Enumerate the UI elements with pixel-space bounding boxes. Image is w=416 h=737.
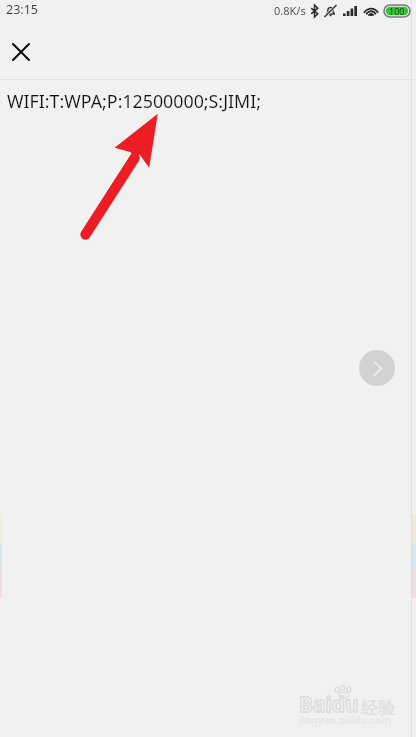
staticText: Baidu bbox=[299, 690, 359, 719]
button[interactable]: WIFI:T:WPA;P:12500000;S:JIMI; bbox=[0, 80, 416, 122]
staticText: jingyan.baidu.com bbox=[299, 713, 391, 727]
staticText: 0.8K/s bbox=[274, 3, 306, 18]
button[interactable]: Close bbox=[1, 32, 41, 72]
button[interactable]: Next bbox=[359, 350, 395, 386]
staticText: 经验 bbox=[361, 698, 395, 719]
staticText: 23:15 bbox=[6, 1, 38, 18]
staticText: WIFI:T:WPA;P:12500000;S:JIMI; bbox=[7, 89, 261, 113]
staticText: 100 bbox=[389, 5, 405, 17]
